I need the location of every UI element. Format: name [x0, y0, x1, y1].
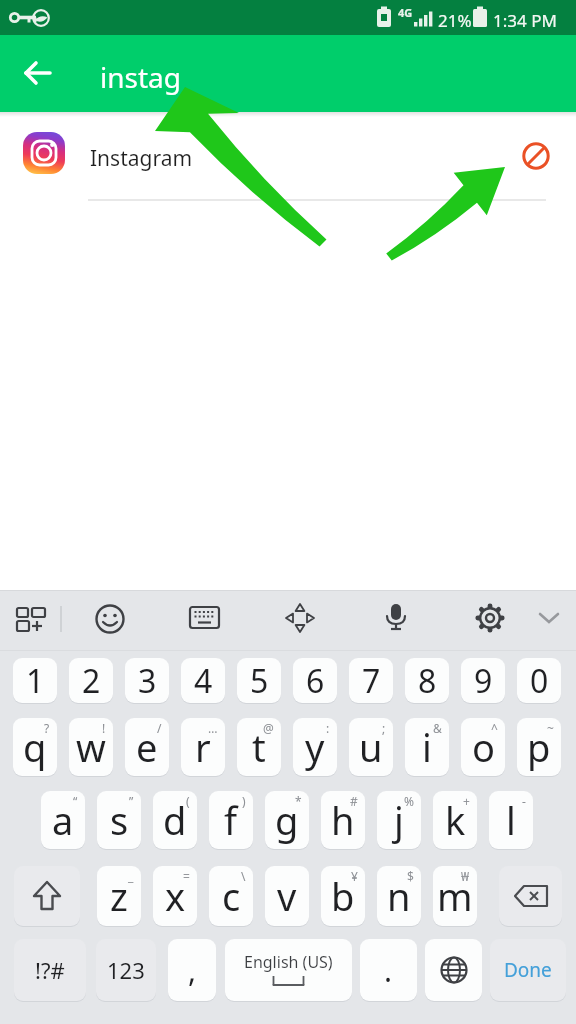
button[interactable]: w — [69, 718, 113, 776]
button[interactable]: e — [125, 718, 169, 776]
button[interactable]: p — [517, 718, 561, 776]
button[interactable]: 4 — [181, 658, 225, 703]
button[interactable]: m — [433, 866, 477, 926]
button[interactable]: j — [377, 791, 421, 849]
staticText: m — [437, 870, 473, 922]
button[interactable]: a — [41, 791, 85, 849]
staticText: d — [163, 794, 187, 846]
button[interactable]: y — [293, 718, 337, 776]
button[interactable]: z — [97, 866, 141, 926]
button[interactable]: 7 — [349, 658, 393, 703]
staticText: k — [445, 794, 466, 846]
button[interactable]: 1 — [13, 658, 57, 703]
staticText: 3 — [138, 659, 157, 703]
button[interactable]: h — [321, 791, 365, 849]
staticText: w — [76, 721, 106, 773]
staticText: e — [136, 721, 158, 773]
staticText: c — [222, 870, 241, 922]
button[interactable] — [425, 939, 482, 1001]
staticText: 9 — [474, 659, 493, 703]
staticText: % — [404, 793, 414, 809]
button[interactable]: 5 — [237, 658, 281, 703]
button[interactable]: d — [153, 791, 197, 849]
staticText: 123 — [107, 955, 145, 985]
staticText: # — [350, 793, 358, 809]
staticText: v — [277, 870, 297, 922]
staticText: 21% — [438, 9, 472, 32]
staticText: q — [23, 721, 47, 773]
staticText: . — [384, 950, 393, 991]
staticText: ( — [186, 793, 190, 809]
staticText: ^ — [491, 720, 498, 736]
button[interactable]: 8 — [405, 658, 449, 703]
staticText: g — [275, 794, 299, 846]
button[interactable]: t — [237, 718, 281, 776]
staticText: English (US) — [244, 951, 333, 973]
staticText: , — [188, 950, 197, 991]
button[interactable]: . — [360, 939, 417, 1001]
staticText: Instagram — [90, 144, 193, 173]
staticText: = — [183, 868, 190, 884]
staticText: ¥ — [351, 868, 358, 884]
staticText: 7 — [362, 659, 381, 703]
staticText: instag — [100, 58, 181, 96]
staticText: t — [252, 721, 266, 773]
button[interactable]: r — [181, 718, 225, 776]
button[interactable]: b — [321, 866, 365, 926]
button[interactable]: 123 — [96, 939, 156, 1001]
button[interactable]: 0 — [517, 658, 561, 703]
button[interactable]: 2 — [69, 658, 113, 703]
staticText: a — [52, 794, 74, 846]
button[interactable]: c — [209, 866, 253, 926]
button[interactable]: n — [377, 866, 421, 926]
button[interactable]: q — [13, 718, 57, 776]
button[interactable]: , — [168, 939, 216, 1001]
staticText: !?# — [35, 955, 65, 985]
button[interactable]: l — [489, 791, 533, 849]
button[interactable] — [12, 50, 64, 96]
staticText: z — [110, 870, 128, 922]
staticText: Done — [504, 957, 552, 983]
button[interactable]: s — [97, 791, 141, 849]
staticText: y — [305, 721, 325, 773]
staticText: s — [110, 794, 129, 846]
button[interactable] — [0, 117, 576, 201]
button[interactable]: f — [209, 791, 253, 849]
button[interactable]: English (US) — [225, 939, 352, 1001]
button[interactable]: o — [461, 718, 505, 776]
staticText: i — [422, 721, 432, 773]
staticText: ₩ — [461, 868, 470, 884]
staticText: 1:34 PM — [493, 9, 557, 32]
staticText: ) — [242, 793, 246, 809]
staticText: l — [506, 794, 516, 846]
button[interactable]: Done — [490, 939, 566, 1001]
staticText: - — [522, 793, 526, 809]
staticText: 2 — [82, 659, 101, 703]
staticText: \ — [241, 868, 246, 884]
button[interactable]: v — [265, 866, 309, 926]
staticText: @ — [263, 720, 274, 736]
button[interactable]: 6 — [293, 658, 337, 703]
staticText: ? — [44, 720, 50, 736]
staticText: * — [295, 793, 302, 809]
staticText: 1 — [26, 659, 45, 703]
staticText: ; — [382, 720, 386, 736]
button[interactable]: 9 — [461, 658, 505, 703]
button[interactable]: x — [153, 866, 197, 926]
button[interactable]: k — [433, 791, 477, 849]
staticText: 4 — [194, 659, 213, 703]
staticText: ” — [129, 793, 134, 809]
staticText: 0 — [530, 659, 549, 703]
button[interactable]: u — [349, 718, 393, 776]
button[interactable] — [499, 866, 562, 926]
staticText: ! — [102, 720, 106, 736]
button[interactable]: !?# — [14, 939, 86, 1001]
button[interactable]: i — [405, 718, 449, 776]
staticText: … — [208, 720, 218, 736]
button[interactable]: g — [265, 791, 309, 849]
button[interactable] — [0, 590, 576, 651]
staticText: 5 — [250, 659, 269, 703]
button[interactable] — [14, 866, 80, 926]
button[interactable]: 3 — [125, 658, 169, 703]
